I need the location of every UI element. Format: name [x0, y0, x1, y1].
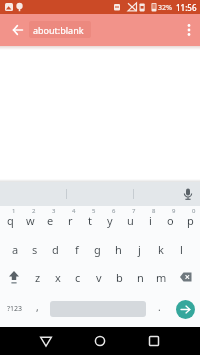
staticText: v — [96, 270, 102, 285]
staticText: z — [35, 270, 41, 285]
staticText: , — [36, 300, 39, 314]
staticText: 11:56 — [176, 2, 197, 13]
staticText: y — [107, 213, 113, 228]
button[interactable] — [172, 263, 200, 291]
staticText: s — [32, 242, 38, 257]
button[interactable]: w — [20, 206, 40, 235]
staticText: . — [158, 300, 161, 314]
button[interactable] — [48, 291, 148, 327]
button[interactable]: u — [120, 206, 140, 235]
staticText: 2 — [32, 207, 36, 215]
staticText: 6 — [112, 207, 116, 215]
staticText: h — [115, 242, 122, 257]
staticText: j — [138, 242, 141, 257]
button[interactable]: k — [150, 235, 171, 263]
button[interactable]: b — [109, 263, 130, 291]
button[interactable]: ?123 — [0, 291, 26, 327]
staticText: d — [52, 242, 59, 257]
staticText: x — [55, 270, 61, 285]
button[interactable]: g — [87, 235, 108, 263]
staticText: g — [94, 242, 101, 257]
button[interactable]: q — [0, 206, 20, 235]
button[interactable]: e — [40, 206, 60, 235]
staticText: 0 — [192, 207, 196, 215]
staticText: l — [180, 242, 183, 257]
staticText: ?123 — [7, 304, 23, 314]
staticText: q — [7, 213, 14, 228]
button[interactable]: p — [180, 206, 200, 235]
button[interactable]: m — [151, 263, 172, 291]
button[interactable]: t — [80, 206, 100, 235]
button[interactable]: . — [148, 291, 170, 327]
button[interactable]: j — [129, 235, 150, 263]
button[interactable]: y — [100, 206, 120, 235]
staticText: 5 — [92, 207, 96, 215]
staticText: u — [127, 213, 134, 228]
button[interactable] — [127, 327, 181, 355]
button[interactable] — [176, 18, 200, 42]
button[interactable]: i — [140, 206, 160, 235]
button[interactable]: , — [26, 291, 48, 327]
staticText: r — [68, 213, 73, 228]
staticText: 8 — [152, 207, 156, 215]
staticText: i — [149, 213, 152, 228]
staticText: t — [88, 213, 92, 228]
button[interactable]: h — [108, 235, 129, 263]
staticText: 1 — [12, 207, 16, 215]
button[interactable]: n — [130, 263, 151, 291]
staticText: p — [187, 213, 194, 228]
button[interactable] — [73, 327, 127, 355]
staticText: 32% — [158, 3, 172, 13]
staticText: c — [75, 270, 81, 285]
staticText: m — [156, 270, 167, 285]
staticText: f — [75, 242, 79, 257]
button[interactable] — [19, 327, 73, 355]
button[interactable]: d — [45, 235, 66, 263]
staticText: 4 — [72, 207, 76, 215]
staticText: about:blank — [33, 24, 84, 36]
staticText: 3 — [52, 207, 56, 215]
button[interactable]: x — [48, 263, 68, 291]
button[interactable]: r — [60, 206, 80, 235]
button[interactable]: a — [5, 235, 25, 263]
button[interactable] — [0, 263, 28, 291]
staticText: 7 — [132, 207, 136, 215]
staticText: w — [26, 213, 35, 228]
staticText: k — [158, 242, 164, 257]
button[interactable]: l — [171, 235, 192, 263]
button[interactable]: about:blank — [29, 21, 91, 38]
staticText: e — [47, 213, 54, 228]
button[interactable]: o — [160, 206, 180, 235]
staticText: b — [116, 270, 123, 285]
staticText: a — [12, 242, 19, 257]
button[interactable] — [4, 16, 32, 44]
button[interactable]: f — [66, 235, 87, 263]
staticText: o — [167, 213, 174, 228]
staticText: 9 — [172, 207, 176, 215]
button[interactable]: z — [28, 263, 48, 291]
button[interactable]: c — [68, 263, 88, 291]
button[interactable]: v — [88, 263, 109, 291]
button[interactable] — [180, 186, 196, 202]
button[interactable] — [170, 291, 200, 327]
staticText: n — [137, 270, 144, 285]
button[interactable]: s — [25, 235, 45, 263]
